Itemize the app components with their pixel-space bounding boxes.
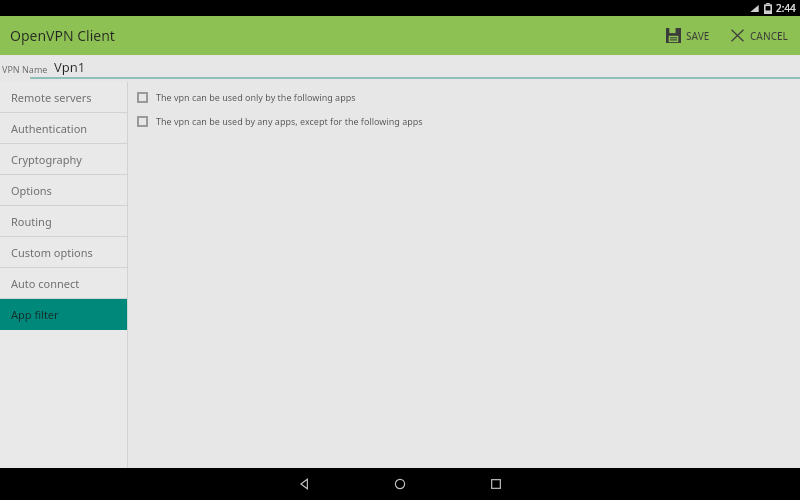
button[interactable]: Cancel xyxy=(724,22,794,49)
staticText: VPN Name xyxy=(2,63,48,75)
staticText: Options xyxy=(11,183,52,198)
button[interactable]: The vpn can be used only by the followin… xyxy=(135,89,358,105)
other: Cancel xyxy=(730,28,745,43)
staticText: Routing xyxy=(11,214,52,229)
button[interactable]: Options xyxy=(0,175,127,206)
button[interactable]: Back xyxy=(256,468,352,500)
button[interactable]: The vpn can be used by any apps, except … xyxy=(135,113,425,129)
button[interactable]: Home xyxy=(352,468,448,500)
staticText: Remote servers xyxy=(11,90,92,105)
staticText: The vpn can be used only by the followin… xyxy=(156,91,356,103)
staticText: Authentication xyxy=(11,121,88,136)
button[interactable]: Remote servers xyxy=(0,82,127,113)
staticText: CANCEL xyxy=(750,29,788,43)
other: Save xyxy=(666,28,681,43)
staticText: Cryptography xyxy=(11,152,82,167)
button[interactable]: Auto connect xyxy=(0,268,127,299)
button[interactable]: Cryptography xyxy=(0,144,127,175)
staticText: The vpn can be used by any apps, except … xyxy=(156,115,423,127)
staticText: 2:44 xyxy=(776,1,796,15)
button[interactable]: Save xyxy=(660,22,716,49)
button[interactable]: Custom options xyxy=(0,237,127,268)
button[interactable]: VPN Name xyxy=(0,55,800,77)
staticText: OpenVPN Client xyxy=(10,26,115,45)
button[interactable]: Recent apps xyxy=(448,468,544,500)
staticText: SAVE xyxy=(686,29,710,43)
button[interactable]: Authentication xyxy=(0,113,127,144)
button[interactable]: Routing xyxy=(0,206,127,237)
staticText: Auto connect xyxy=(11,276,80,291)
staticText: Custom options xyxy=(11,245,93,260)
staticText: App filter xyxy=(11,307,59,322)
button[interactable]: App filter xyxy=(0,299,127,330)
staticText: Vpn1 xyxy=(54,58,86,76)
